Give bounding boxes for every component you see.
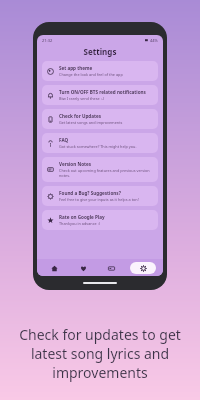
button[interactable]: Set app theme — [42, 61, 158, 81]
staticText: 21:32 — [42, 38, 53, 43]
staticText: Rate on Google Play — [59, 214, 105, 220]
button[interactable]: Rate on Google Play — [42, 210, 158, 230]
button[interactable]: Version Notes — [42, 157, 158, 182]
staticText: 44% — [150, 38, 158, 43]
staticText: Feel free to give your inputs as it help… — [59, 197, 139, 202]
button[interactable]: Settings — [130, 262, 156, 274]
staticText: Set app theme — [59, 65, 93, 71]
staticText: Check for Updates — [59, 113, 102, 119]
staticText: Got stuck somewhere? This might help you… — [59, 144, 137, 149]
button[interactable]: Home — [44, 261, 64, 275]
staticText: Check out upcoming features and previous… — [59, 168, 153, 178]
button[interactable]: Found a Bug? Suggestions? — [42, 186, 158, 206]
button[interactable]: FAQ — [42, 133, 158, 153]
button[interactable]: Turn ON/OFF BTS related notifications — [42, 85, 158, 105]
button[interactable]: Favorites — [73, 261, 93, 275]
button[interactable]: Cards — [101, 261, 121, 275]
staticText: Get latest songs and improvements — [59, 120, 123, 125]
staticText: Change the look and feel of the app — [59, 72, 123, 77]
staticText: Turn ON/OFF BTS related notifications — [59, 89, 146, 95]
staticText: Found a Bug? Suggestions? — [59, 190, 121, 196]
staticText: Settings — [37, 46, 163, 57]
staticText: Thankyou in advance :) — [59, 221, 100, 226]
button[interactable]: Check for Updates — [42, 109, 158, 129]
staticText: Btw I rarely send these :-) — [59, 96, 105, 101]
staticText: Version Notes — [59, 161, 92, 167]
staticText: FAQ — [59, 137, 69, 143]
staticText: Check for updates to get latest song lyr… — [14, 325, 186, 382]
